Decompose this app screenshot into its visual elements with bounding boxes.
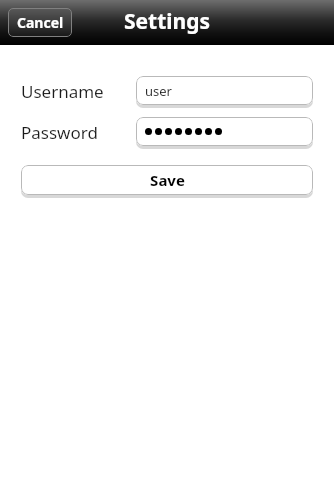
staticText: Settings [124, 7, 211, 36]
staticText: Save [150, 170, 185, 190]
button[interactable]: Username field [136, 76, 313, 106]
staticText: Password [21, 121, 98, 144]
staticText: Cancel [17, 13, 64, 32]
staticText: Username [21, 80, 104, 103]
button[interactable]: Cancel [8, 8, 72, 37]
button[interactable]: Save [21, 165, 313, 195]
staticText: user [145, 82, 172, 100]
button[interactable]: Password field [136, 117, 313, 147]
